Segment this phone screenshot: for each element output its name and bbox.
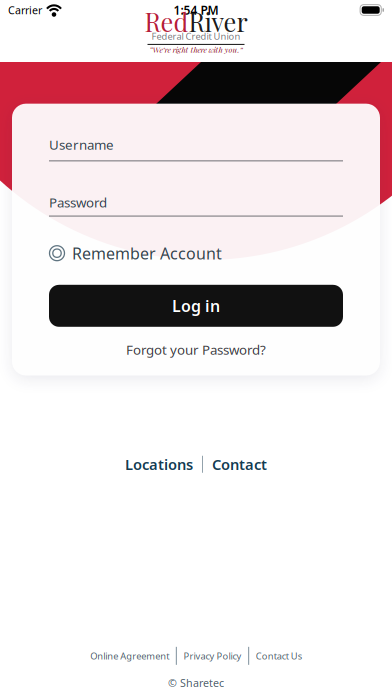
staticText: Federal Credit Union	[151, 30, 240, 42]
staticText: Username	[49, 136, 114, 153]
staticText: Remember Account	[72, 243, 222, 264]
button[interactable]: Contact Us	[256, 650, 302, 662]
button[interactable]: Online Agreement	[90, 650, 169, 662]
staticText: “We’re right there with you.”	[149, 44, 242, 55]
staticText: Password	[49, 193, 107, 211]
staticText: Contact Us	[256, 650, 302, 662]
button[interactable]: Forgot your Password?	[12, 341, 380, 358]
staticText: Privacy Policy	[183, 650, 241, 662]
staticText: Red	[144, 5, 188, 38]
button[interactable]: Privacy Policy	[183, 650, 241, 662]
staticText: © Sharetec	[168, 676, 224, 690]
staticText: Online Agreement	[90, 650, 169, 662]
staticText: Log in	[172, 295, 220, 316]
staticText: Locations	[125, 454, 193, 474]
staticText: 1:54 PM	[173, 2, 218, 18]
button[interactable]: Contact	[212, 454, 267, 474]
button[interactable]: Log in	[49, 285, 343, 327]
staticText: Forgot your Password?	[126, 341, 266, 358]
staticText: Contact	[212, 454, 267, 474]
staticText: River	[188, 5, 247, 38]
button[interactable]: Locations	[125, 454, 193, 474]
button[interactable]: Remember Account	[12, 217, 380, 264]
staticText: Carrier	[8, 3, 42, 17]
